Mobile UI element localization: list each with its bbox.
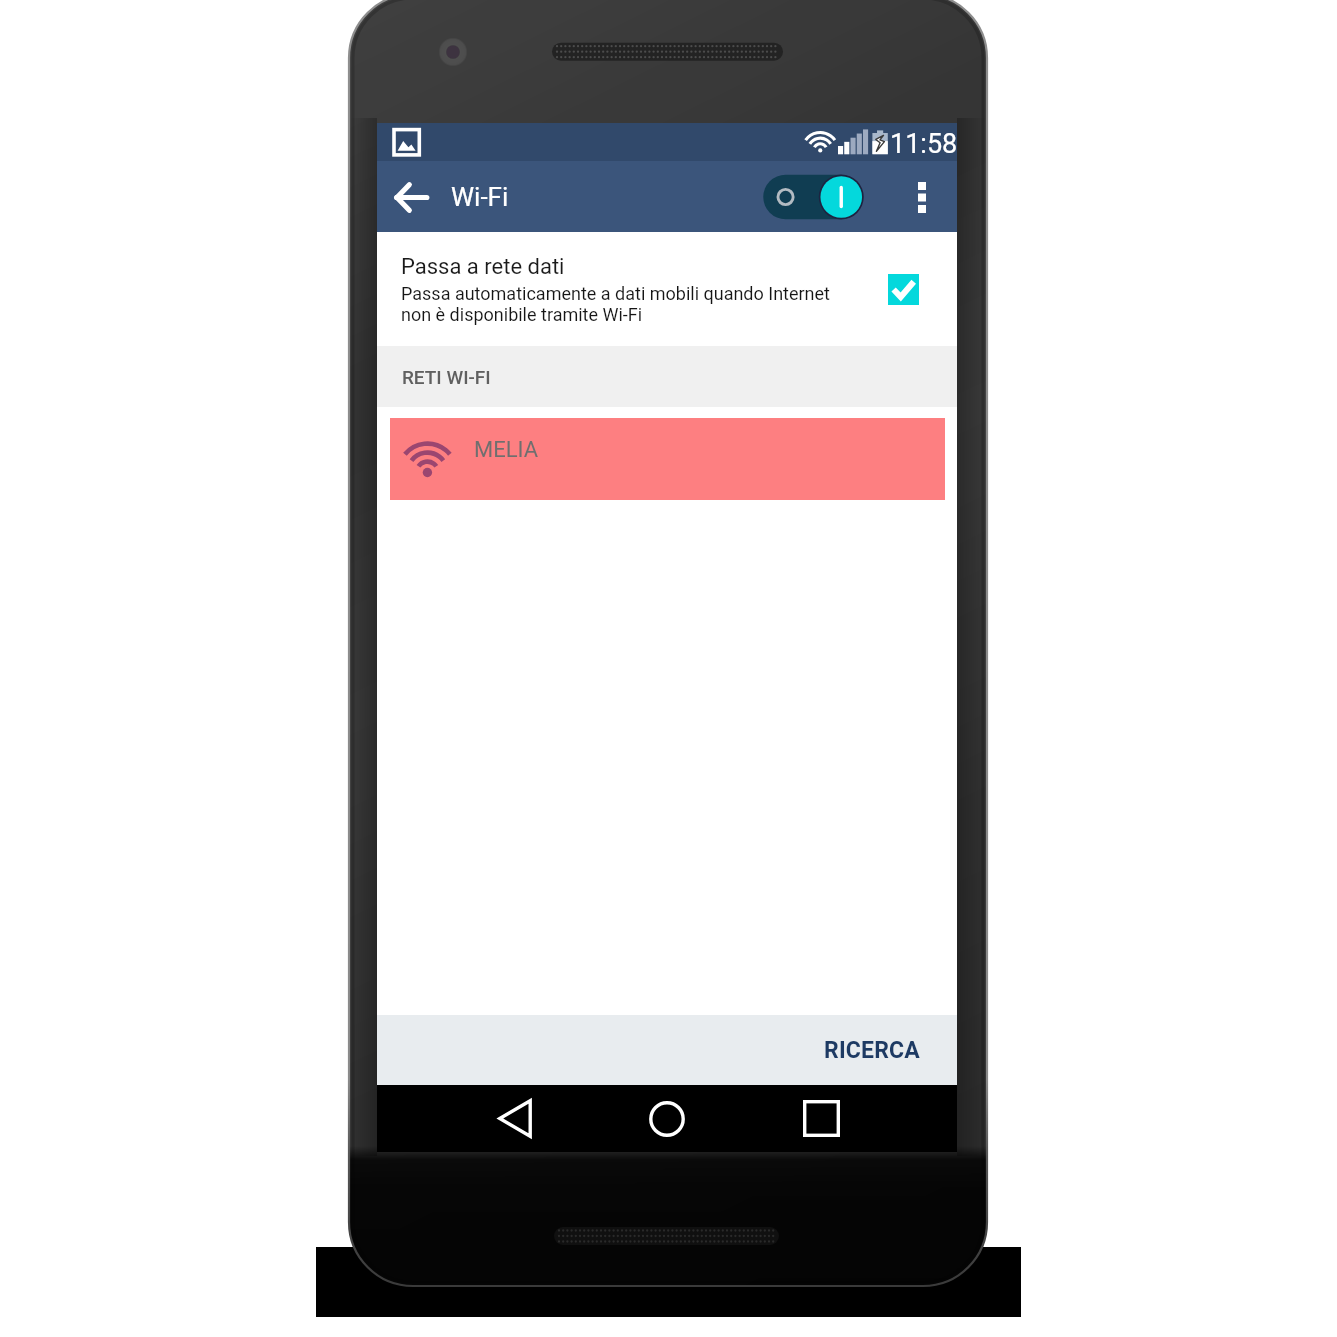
staticText: 11:58 <box>890 128 958 160</box>
button[interactable]: Recents <box>787 1085 855 1152</box>
staticText: MELIA <box>474 437 539 463</box>
staticText: Wi-Fi <box>451 182 509 212</box>
staticText: Passa a rete dati <box>401 254 565 280</box>
staticText: RETI WI-FI <box>402 366 491 388</box>
staticText: RICERCA <box>824 1037 921 1064</box>
button[interactable]: More options <box>893 167 951 227</box>
button[interactable]: Home <box>633 1085 701 1152</box>
button[interactable]: Back <box>383 169 439 225</box>
button[interactable]: Back <box>481 1085 549 1152</box>
button[interactable]: Passa a rete dati <box>377 232 957 346</box>
button[interactable]: Wi-Fi on/off <box>762 170 864 224</box>
button[interactable]: MELIA <box>390 418 945 500</box>
staticText: Passa automaticamente a dati mobili quan… <box>401 283 853 325</box>
button[interactable]: RICERCA <box>802 1021 957 1080</box>
